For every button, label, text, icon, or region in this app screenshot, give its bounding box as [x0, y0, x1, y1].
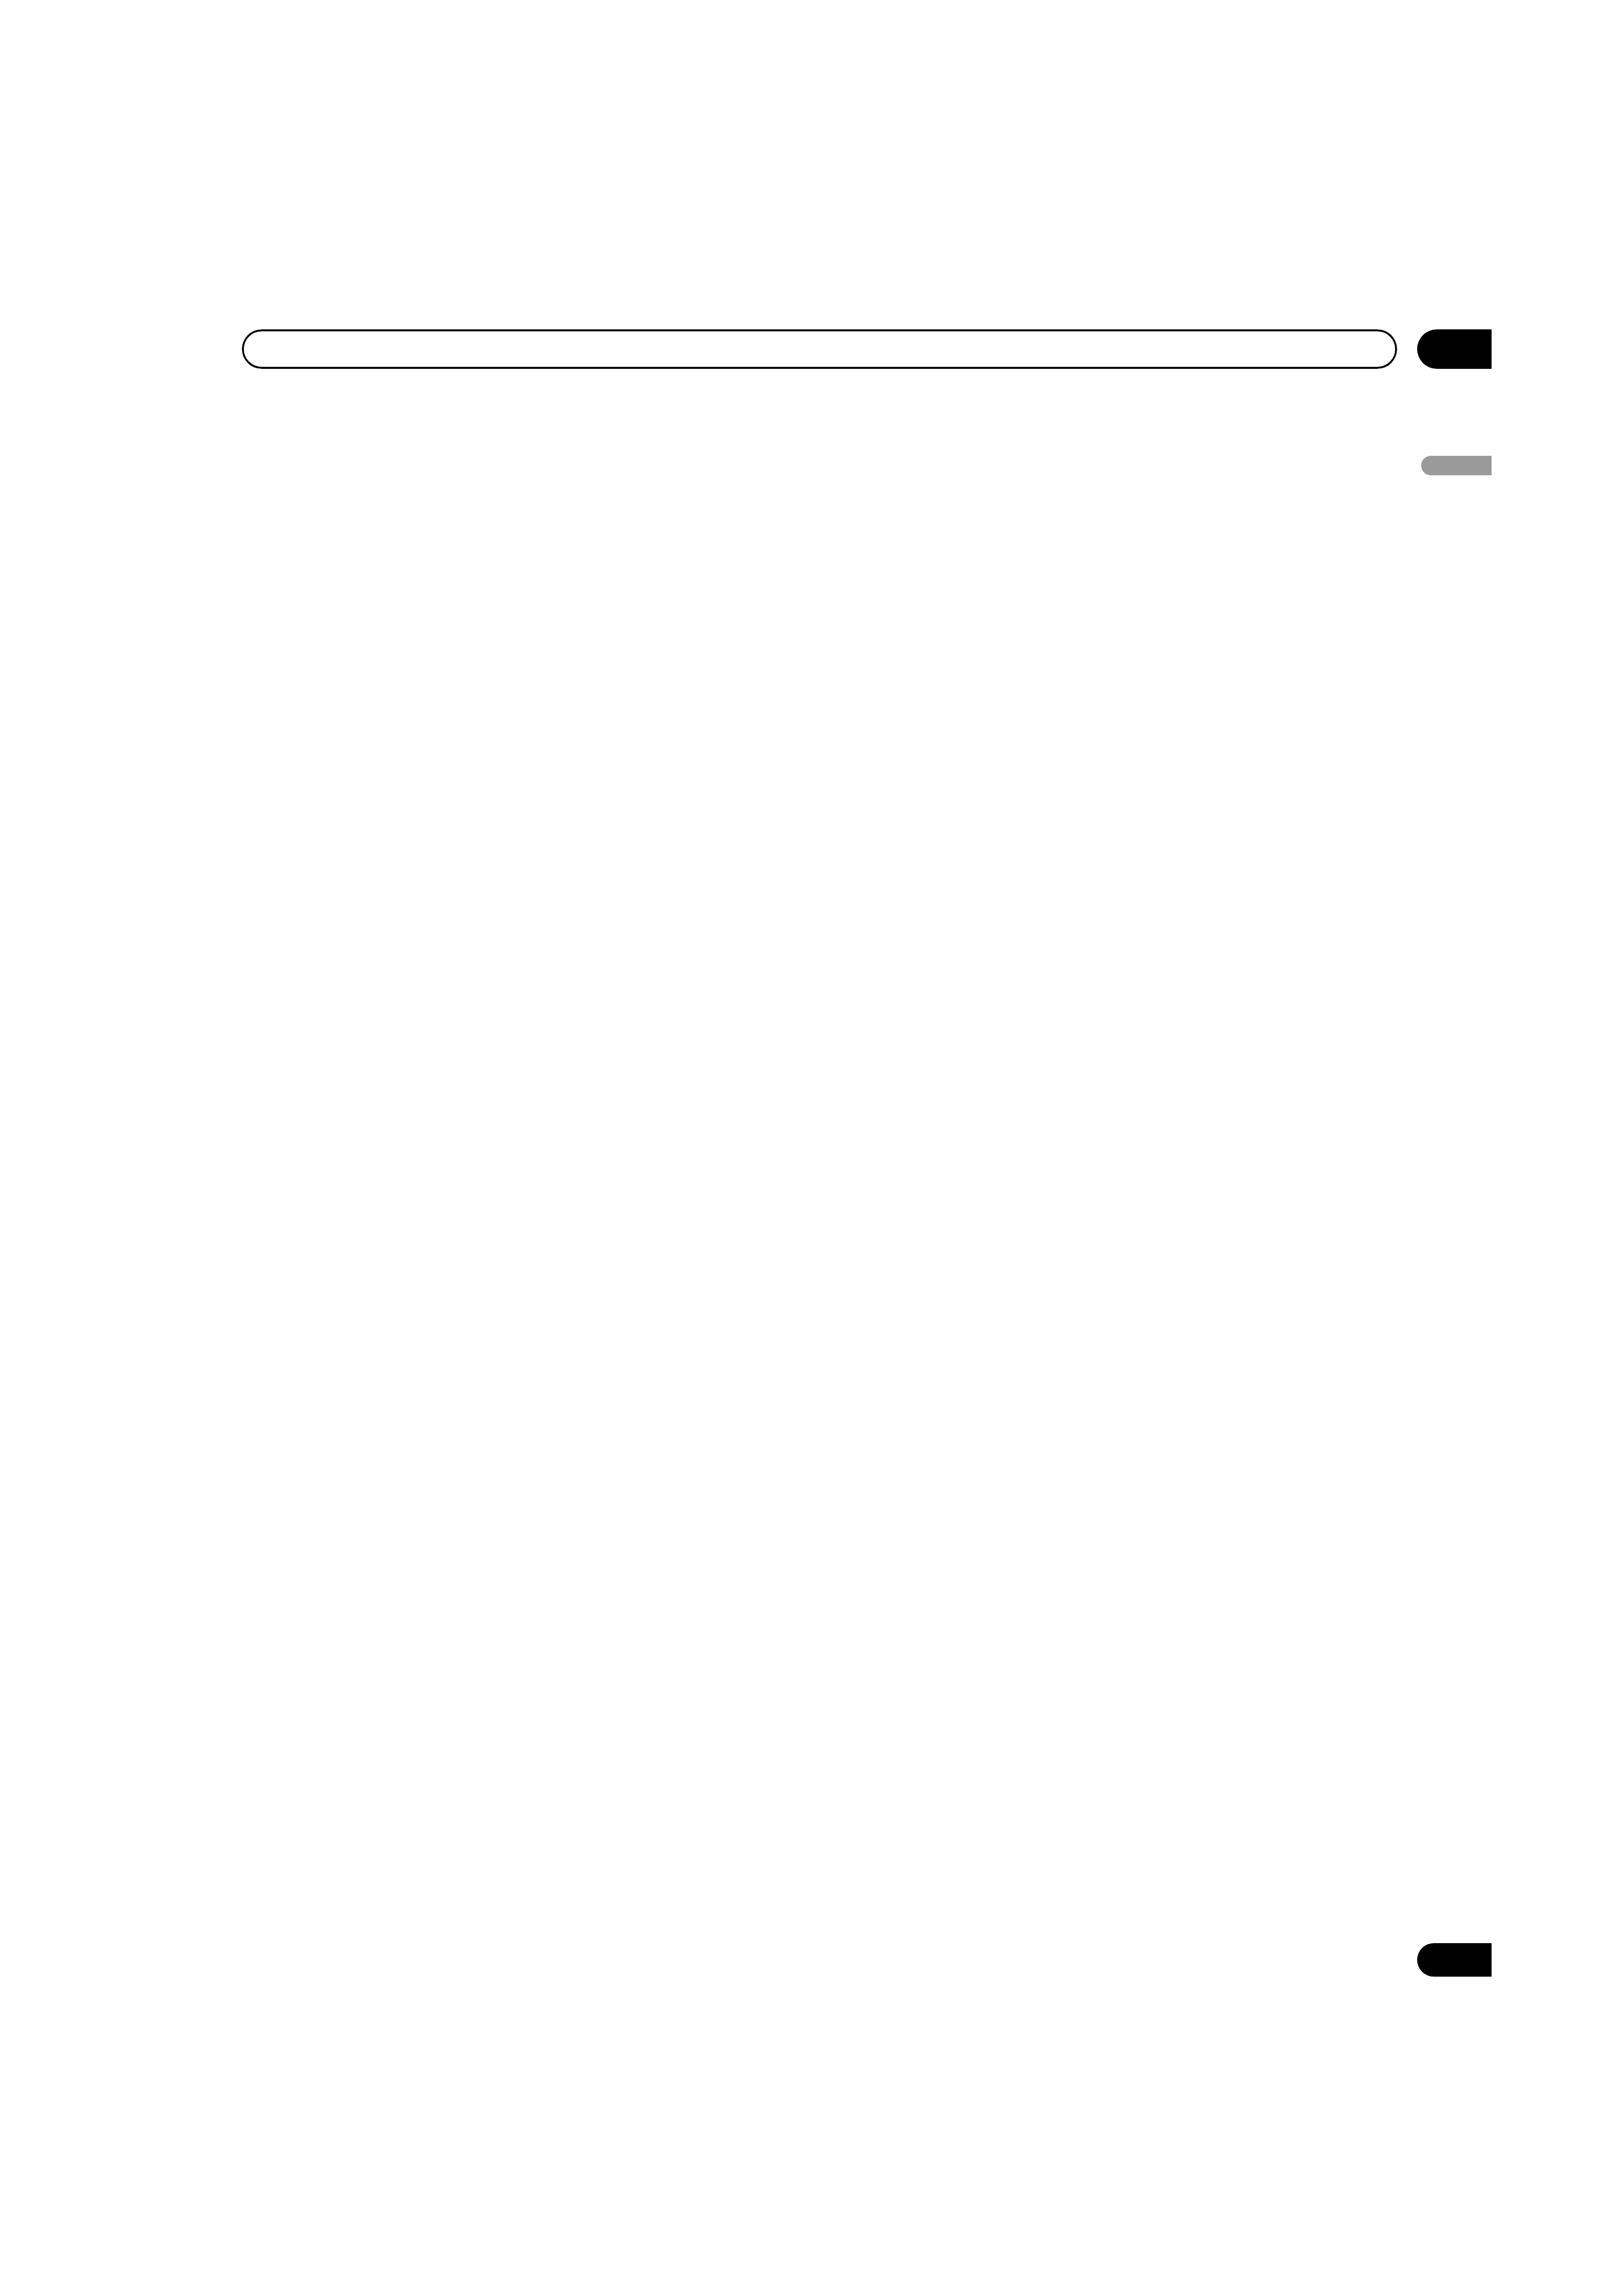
button[interactable]: Search	[1417, 329, 1492, 369]
button[interactable]: Search field	[242, 329, 1397, 369]
button[interactable]: Status	[1421, 456, 1492, 475]
button[interactable]: Continue	[1417, 1943, 1492, 1977]
